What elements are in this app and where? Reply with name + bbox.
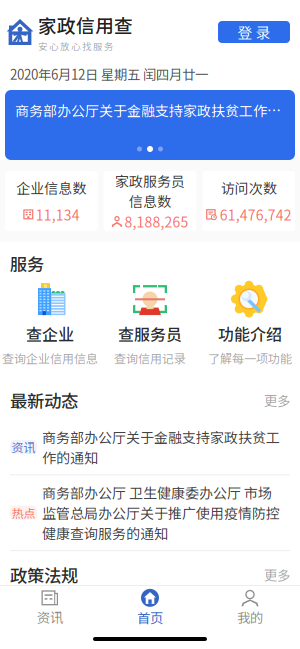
button[interactable]: 商务部办公厅 国家发展改革委办公厅 国家卫生健康委办公厅 (0, 594, 300, 649)
staticText: 8,188,265 (124, 211, 188, 231)
staticText: 企业信息数 (16, 177, 86, 198)
button[interactable]: 首页 (100, 589, 200, 627)
staticText: 查服务员 (118, 322, 182, 345)
staticText: 政策法规 (10, 562, 78, 587)
staticText: 了解每一项功能 (208, 349, 292, 367)
staticText: 商务部办公厅关于金融支持家政扶贫工作的通知 (15, 100, 285, 120)
button[interactable]: 我的 (200, 589, 300, 627)
staticText: 11,134 (36, 204, 80, 224)
staticText: 商务部办公厅关于金融支持家政扶贫工作的通知 (42, 427, 280, 467)
staticText: 家政服务员 (115, 171, 185, 191)
staticText: 安 心 放 心 找 服 务 (38, 39, 113, 53)
staticText: 我的 (237, 607, 263, 627)
button[interactable]: 热点 (0, 475, 300, 550)
staticText: 家政信用查 (38, 11, 133, 38)
staticText: 最新动态 (10, 388, 78, 413)
staticText: 首页 (137, 608, 163, 627)
staticText: 更多 (264, 565, 290, 584)
button[interactable]: 企业信息数 (5, 171, 98, 231)
staticText: 61,476,742 (220, 204, 292, 224)
button[interactable]: 资讯 (0, 420, 300, 474)
staticText: 查询信用记录 (114, 349, 186, 367)
button[interactable]: 功能介绍 (200, 281, 300, 367)
button[interactable]: 家政服务员 (104, 171, 196, 231)
button[interactable]: 更多 (264, 390, 290, 410)
staticText: 功能介绍 (218, 322, 282, 345)
button[interactable]: 更多 (264, 565, 290, 584)
button[interactable]: 资讯 (0, 589, 100, 627)
staticText: 访问次数 (221, 177, 277, 198)
staticText: 查企业 (26, 322, 74, 345)
button[interactable]: 访问次数 (202, 171, 295, 231)
staticText: 资讯 (37, 607, 63, 627)
button[interactable]: 查企业 (0, 281, 100, 367)
staticText: 资讯 (11, 438, 35, 456)
button[interactable]: 查服务员 (100, 281, 200, 367)
staticText: 服务 (10, 251, 44, 276)
staticText: 2020年6月12日 星期五 闰四月廿一 (10, 64, 208, 84)
button[interactable]: 登 录 (218, 21, 290, 43)
staticText: 商务部办公厅 卫生健康委办公厅 市场监管总局办公厅关于推广使用疫情防控健康查询服… (42, 482, 280, 543)
staticText: 热点 (11, 504, 35, 521)
staticText: 查询企业信用信息 (2, 349, 98, 367)
staticText: 信息数 (129, 191, 171, 211)
staticText: 更多 (264, 390, 290, 410)
staticText: 登 录 (237, 21, 270, 43)
staticText: 商务部办公厅 国家发展改革委办公厅 国家卫生健康委办公厅 (10, 601, 282, 642)
